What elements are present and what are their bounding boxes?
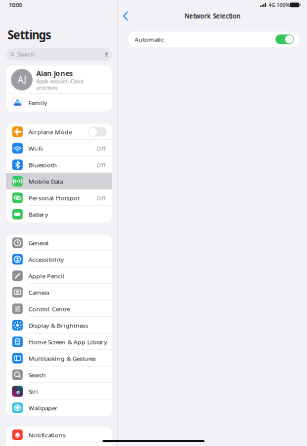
button[interactable]: Apple Pencil xyxy=(6,267,112,284)
staticText: Off xyxy=(97,194,105,202)
staticText: Bluetooth xyxy=(28,161,57,169)
staticText: Airplane Mode xyxy=(28,128,72,136)
staticText: Battery xyxy=(28,210,48,218)
button[interactable]: AJ xyxy=(6,65,112,94)
staticText: Multitasking & Gestures xyxy=(28,354,96,362)
button[interactable]: Notifications xyxy=(6,426,112,443)
staticText: Siri xyxy=(28,387,38,395)
staticText: Off xyxy=(97,161,105,169)
button[interactable]: Bluetooth xyxy=(6,156,112,173)
button[interactable]: Automatic xyxy=(128,31,300,47)
staticText: Wi-Fi xyxy=(28,144,43,152)
button[interactable]: Wi-Fi xyxy=(6,140,112,156)
button[interactable]: General xyxy=(6,234,112,251)
staticText: Alan Jones xyxy=(36,68,73,78)
button[interactable]: Accessibility xyxy=(6,251,112,267)
button[interactable]: Back xyxy=(121,9,131,22)
staticText: Search xyxy=(28,371,46,379)
button[interactable]: Battery xyxy=(6,206,112,222)
staticText: 100% xyxy=(276,2,289,8)
button[interactable]: Search xyxy=(6,48,112,61)
staticText: Wallpaper xyxy=(28,404,58,412)
staticText: Camera xyxy=(28,288,49,296)
staticText: 4G xyxy=(268,2,275,8)
staticText: 10:00 xyxy=(9,2,22,8)
button[interactable]: Airplane Mode xyxy=(6,123,112,140)
button[interactable]: Wallpaper xyxy=(6,399,112,416)
staticText: General xyxy=(28,239,49,247)
staticText: Home Screen & App Library xyxy=(28,338,107,346)
staticText: Control Centre xyxy=(28,305,70,313)
button[interactable]: Home Screen & App Library xyxy=(6,333,112,350)
button[interactable]: Family xyxy=(6,94,112,111)
button[interactable]: Personal Hotspot xyxy=(6,189,112,206)
button[interactable]: Camera xyxy=(6,284,112,300)
staticText: Apple Account, iCloud xyxy=(36,78,84,84)
staticText: Settings xyxy=(7,27,51,42)
button[interactable]: Siri xyxy=(6,383,112,399)
button[interactable]: Mobile Data xyxy=(6,173,112,189)
staticText: Mobile Data xyxy=(28,177,63,185)
staticText: Personal Hotspot xyxy=(28,194,79,202)
button[interactable]: Multitasking & Gestures xyxy=(6,350,112,366)
staticText: Search xyxy=(17,51,35,58)
staticText: Accessibility xyxy=(28,255,64,263)
staticText: Automatic xyxy=(134,35,164,43)
button[interactable]: Control Centre xyxy=(6,300,112,317)
staticText: Network Selection xyxy=(184,12,241,20)
staticText: Notifications xyxy=(28,431,66,439)
staticText: Display & Brightness xyxy=(28,321,88,329)
staticText: AJ xyxy=(18,74,26,85)
staticText: and more xyxy=(36,85,58,91)
button[interactable]: Display & Brightness xyxy=(6,317,112,333)
button[interactable]: Search xyxy=(6,366,112,383)
staticText: Off xyxy=(97,144,105,152)
staticText: Family xyxy=(28,99,47,107)
staticText: Apple Pencil xyxy=(28,272,65,280)
